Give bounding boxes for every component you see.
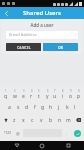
button[interactable]: j: [55, 101, 63, 113]
staticText: r: [30, 93, 33, 100]
staticText: 4: [31, 89, 33, 93]
button[interactable]: 5: [35, 89, 43, 100]
button[interactable]: OK: [43, 43, 78, 51]
staticText: d: [25, 104, 29, 111]
button[interactable]: a: [5, 101, 14, 113]
staticText: .: [66, 131, 68, 136]
staticText: h: [49, 104, 53, 111]
button[interactable]: Backspace: [73, 114, 83, 126]
staticText: 8: [62, 89, 64, 93]
staticText: 9: [70, 89, 72, 93]
staticText: b: [49, 117, 53, 124]
staticText: e: [22, 93, 25, 100]
button[interactable]: Home: [33, 141, 51, 150]
button[interactable]: Recent apps: [59, 141, 77, 150]
button[interactable]: n: [55, 114, 64, 126]
button[interactable]: 9: [67, 89, 75, 100]
staticText: a: [8, 104, 11, 111]
button[interactable]: Shift: [1, 114, 10, 126]
staticText: 7: [54, 89, 56, 93]
staticText: w: [13, 93, 17, 100]
button[interactable]: Email Address: [6, 31, 78, 39]
button[interactable]: c: [28, 114, 37, 126]
staticText: c: [31, 117, 34, 124]
staticText: x: [22, 117, 25, 124]
staticText: l: [74, 104, 76, 111]
staticText: Shared Users: [23, 9, 61, 17]
staticText: t: [38, 93, 40, 100]
staticText: j: [58, 104, 60, 111]
staticText: v: [40, 117, 43, 124]
staticText: OK: [58, 45, 64, 50]
button[interactable]: z: [10, 114, 19, 126]
staticText: 5: [38, 89, 40, 93]
staticText: 2: [14, 89, 16, 93]
staticText: 3: [23, 89, 25, 93]
button[interactable]: 0: [75, 89, 83, 100]
staticText: z: [13, 117, 16, 124]
button[interactable]: d: [23, 101, 31, 113]
staticText: o: [69, 93, 73, 100]
button[interactable]: f: [31, 101, 39, 113]
button[interactable]: CANCEL: [6, 43, 41, 51]
button[interactable]: 1: [1, 89, 10, 100]
staticText: CANCEL: [17, 45, 31, 50]
button[interactable]: x: [19, 114, 28, 126]
button[interactable]: ?123: [1, 127, 14, 139]
staticText: ?123: [4, 131, 11, 135]
button[interactable]: m: [64, 114, 73, 126]
staticText: 1: [5, 89, 7, 93]
staticText: q: [4, 93, 8, 100]
staticText: @: [16, 131, 20, 136]
staticText: u: [53, 93, 57, 100]
staticText: y: [46, 93, 49, 100]
button[interactable]: s: [14, 101, 23, 113]
staticText: n: [58, 117, 62, 124]
button[interactable]: 4: [27, 89, 35, 100]
staticText: k: [66, 104, 69, 111]
button[interactable]: 8: [59, 89, 67, 100]
staticText: p: [77, 93, 81, 100]
staticText: 6: [47, 89, 49, 93]
button[interactable]: @: [14, 127, 22, 139]
staticText: g: [41, 104, 45, 111]
button[interactable]: Back: [0, 7, 12, 19]
staticText: i: [62, 93, 64, 100]
button[interactable]: 3: [19, 89, 27, 100]
staticText: f: [34, 104, 36, 111]
staticText: m: [66, 117, 71, 124]
staticText: Add a user: [6, 22, 78, 28]
button[interactable]: 2: [10, 89, 19, 100]
staticText: Email Address: [9, 32, 37, 38]
button[interactable]: 6: [43, 89, 51, 100]
button[interactable]: g: [39, 101, 47, 113]
staticText: s: [17, 104, 20, 111]
button[interactable]: b: [46, 114, 55, 126]
button[interactable]: v: [37, 114, 46, 126]
button[interactable]: h: [47, 101, 55, 113]
button[interactable]: 7: [51, 89, 59, 100]
staticText: 0: [78, 89, 80, 93]
button[interactable]: Enter: [71, 127, 83, 139]
button[interactable]: Back: [8, 141, 26, 150]
button[interactable]: l: [71, 101, 79, 113]
button[interactable]: k: [63, 101, 71, 113]
